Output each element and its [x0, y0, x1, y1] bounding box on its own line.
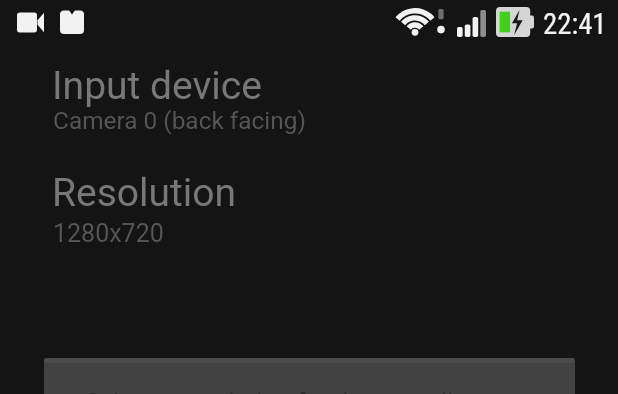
other: Notification — [60, 9, 84, 34]
staticText: Resolution — [52, 170, 237, 216]
button[interactable]: Input device — [0, 52, 618, 146]
other: Screen recording in progress — [17, 11, 44, 34]
staticText: Camera 0 (back facing) — [53, 106, 306, 135]
staticText: 22:41 — [543, 7, 607, 41]
other: Mobile signal strength — [457, 10, 486, 37]
other: Wi-Fi — [401, 8, 429, 35]
button[interactable]: Resolution — [0, 159, 618, 253]
other: Battery charging — [496, 7, 534, 37]
staticText: 1280x720 — [53, 219, 164, 248]
button[interactable]: Select a resolution for the recording — [44, 358, 575, 394]
staticText: Input device — [52, 63, 262, 109]
other: No internet connection — [436, 8, 446, 35]
